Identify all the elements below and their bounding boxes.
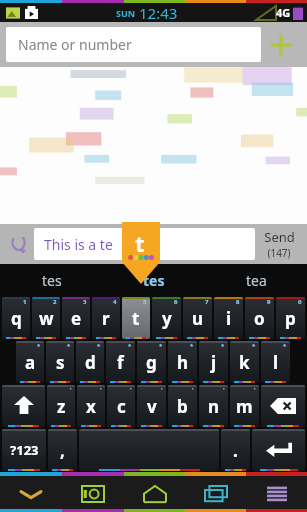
- button[interactable]: ,: [48, 429, 77, 471]
- button[interactable]: Menu: [246, 476, 307, 512]
- staticText: i: [226, 307, 232, 330]
- staticText: *: [221, 342, 225, 350]
- staticText: 8: [236, 298, 240, 306]
- staticText: (147): [267, 246, 291, 260]
- staticText: 12:43: [139, 3, 178, 22]
- staticText: ': [192, 386, 194, 394]
- staticText: k: [239, 351, 250, 374]
- button[interactable]: ?123: [2, 429, 46, 471]
- staticText: 9: [267, 298, 271, 306]
- staticText: c: [117, 395, 126, 418]
- button[interactable]: j: [199, 341, 228, 383]
- button[interactable]: b: [168, 385, 197, 427]
- staticText: h: [177, 351, 189, 374]
- staticText: 4: [113, 298, 117, 306]
- button[interactable]: n: [199, 385, 228, 427]
- staticText: tea: [246, 271, 267, 290]
- button[interactable]: q: [2, 297, 30, 339]
- button[interactable]: This is a te: [34, 228, 255, 260]
- staticText: *: [159, 342, 163, 350]
- staticText: *: [190, 342, 194, 350]
- staticText: a: [25, 351, 36, 374]
- button[interactable]: Home: [124, 476, 185, 512]
- button[interactable]: Recent apps: [185, 476, 246, 512]
- button[interactable]: .: [221, 429, 250, 471]
- staticText: 2: [53, 298, 57, 306]
- button[interactable]: Add recipient: [261, 27, 301, 62]
- button[interactable]: tea: [205, 264, 307, 296]
- button[interactable]: tes: [103, 264, 205, 296]
- button[interactable]: u: [183, 297, 212, 339]
- button[interactable]: t: [122, 297, 150, 339]
- staticText: b: [177, 395, 188, 418]
- button[interactable]: p: [276, 297, 305, 339]
- staticText: .: [233, 439, 238, 462]
- button[interactable]: w: [32, 297, 60, 339]
- staticText: t: [135, 228, 145, 258]
- staticText: z: [57, 395, 66, 418]
- button[interactable]: x: [77, 385, 105, 427]
- staticText: *: [97, 342, 101, 350]
- staticText: *: [67, 342, 71, 350]
- staticText: *: [283, 342, 287, 350]
- button[interactable]: g: [137, 341, 166, 383]
- staticText: *: [128, 342, 132, 350]
- staticText: [147, 439, 152, 461]
- staticText: r: [102, 307, 110, 330]
- staticText: 3: [83, 298, 87, 306]
- staticText: x: [86, 395, 96, 418]
- staticText: y: [162, 307, 172, 330]
- other: Enter: [266, 442, 292, 458]
- staticText: tes: [42, 271, 62, 290]
- staticText: 1: [23, 298, 27, 306]
- button[interactable]: [79, 429, 219, 471]
- button[interactable]: o: [245, 297, 274, 339]
- button[interactable]: y: [152, 297, 181, 339]
- button[interactable]: c: [107, 385, 135, 427]
- staticText: p: [285, 307, 296, 330]
- button[interactable]: z: [47, 385, 75, 427]
- button[interactable]: k: [230, 341, 259, 383]
- button[interactable]: r: [92, 297, 120, 339]
- button[interactable]: [2, 385, 45, 427]
- staticText: d: [85, 351, 96, 374]
- button[interactable]: d: [76, 341, 104, 383]
- staticText: s: [56, 351, 65, 374]
- staticText: 4G: [276, 5, 291, 20]
- button[interactable]: a: [16, 341, 44, 383]
- staticText: g: [146, 351, 157, 374]
- button[interactable]: e: [62, 297, 90, 339]
- button[interactable]: Hide keyboard: [0, 476, 62, 512]
- staticText: Name or number: [18, 35, 132, 54]
- button[interactable]: f: [106, 341, 135, 383]
- button[interactable]: s: [46, 341, 74, 383]
- button[interactable]: Backspace: [261, 385, 305, 427]
- staticText: t: [132, 307, 140, 330]
- staticText: ': [130, 386, 132, 394]
- button[interactable]: l: [261, 341, 290, 383]
- staticText: ?123: [10, 441, 39, 459]
- button[interactable]: Enter: [252, 429, 305, 471]
- staticText: e: [71, 307, 82, 330]
- staticText: j: [211, 351, 217, 374]
- staticText: n: [208, 395, 220, 418]
- staticText: ': [223, 386, 225, 394]
- button[interactable]: m: [230, 385, 259, 427]
- staticText: o: [254, 307, 265, 330]
- staticText: l: [273, 351, 279, 374]
- staticText: ': [254, 386, 256, 394]
- staticText: 6: [174, 298, 178, 306]
- button[interactable]: v: [137, 385, 166, 427]
- staticText: 5: [143, 298, 147, 306]
- staticText: ': [161, 386, 163, 394]
- button[interactable]: Camera: [62, 476, 124, 512]
- staticText: w: [39, 307, 54, 330]
- staticText: ': [70, 386, 72, 394]
- button[interactable]: h: [168, 341, 197, 383]
- button[interactable]: tes: [0, 264, 103, 296]
- button[interactable]: Attach: [4, 228, 34, 260]
- button[interactable]: i: [214, 297, 243, 339]
- button[interactable]: Send: [255, 228, 303, 260]
- button[interactable]: Name or number: [6, 27, 261, 62]
- staticText: ,: [60, 439, 65, 462]
